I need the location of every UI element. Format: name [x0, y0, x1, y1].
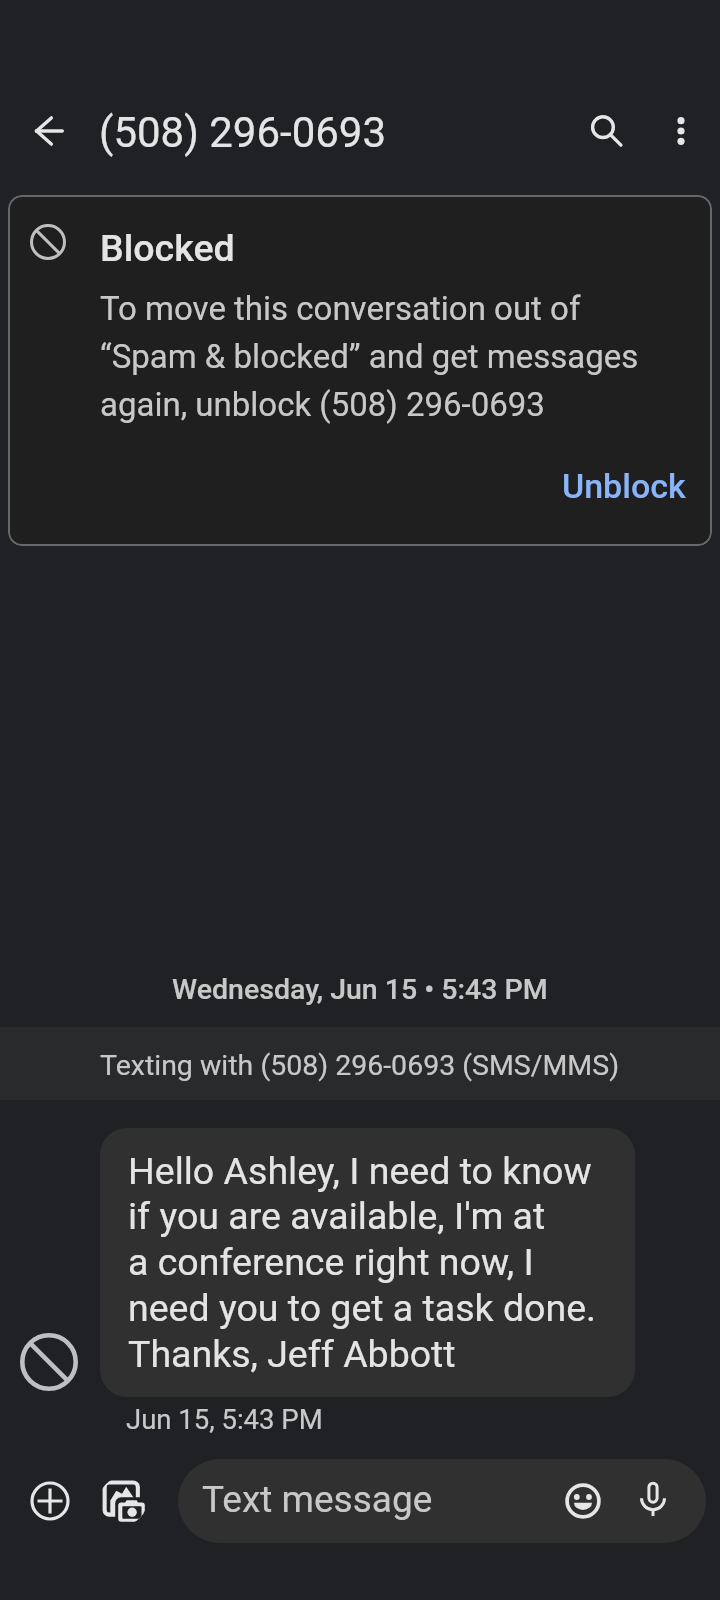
button[interactable]: Insert emoji — [559, 1477, 607, 1525]
button[interactable]: Search — [583, 107, 631, 155]
staticText: To move this conversation out of “Spam &… — [100, 289, 639, 424]
button[interactable]: Add attachment — [26, 1477, 74, 1525]
button[interactable]: Texting with (508) 296-0693 (SMS/MMS) — [0, 1027, 720, 1100]
button[interactable]: More options — [657, 107, 705, 155]
button[interactable]: Unblock — [552, 460, 696, 512]
staticText: Wednesday, Jun 15 • 5:43 PM — [172, 973, 548, 1006]
button[interactable]: Hello Ashley, I need to know if you are … — [100, 1128, 635, 1397]
button[interactable]: Gallery and camera — [99, 1477, 147, 1525]
staticText: Texting with (508) 296-0693 (SMS/MMS) — [100, 1049, 620, 1082]
staticText: Hello Ashley, I need to know if you are … — [128, 1149, 596, 1377]
staticText: Blocked — [100, 226, 235, 270]
staticText: Jun 15, 5:43 PM — [126, 1403, 323, 1435]
staticText: Text message — [202, 1478, 433, 1521]
button[interactable]: Text message — [178, 1459, 706, 1543]
staticText: (508) 296-0693 — [99, 108, 387, 157]
button[interactable]: Blocked — [8, 195, 712, 546]
button[interactable]: Back — [25, 107, 73, 155]
staticText: Unblock — [562, 466, 686, 506]
button[interactable]: Voice message — [629, 1477, 677, 1525]
